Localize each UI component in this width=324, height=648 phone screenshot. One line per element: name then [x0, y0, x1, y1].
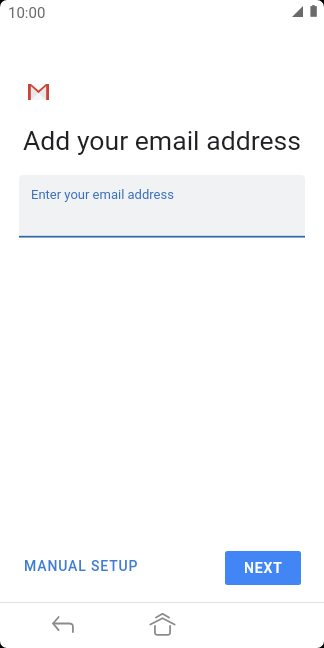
staticText: Enter your email address	[31, 187, 174, 202]
button[interactable]: Enter your email address	[19, 175, 305, 235]
button[interactable]: NEXT	[225, 551, 301, 585]
staticText: Add your email address	[23, 125, 301, 156]
button[interactable]: MANUAL SETUP	[16, 551, 147, 581]
button[interactable]: Back	[47, 608, 79, 640]
staticText: NEXT	[244, 560, 283, 576]
staticText: 10:00	[8, 4, 46, 22]
staticText: MANUAL SETUP	[24, 558, 139, 574]
button[interactable]: Home	[146, 608, 178, 640]
